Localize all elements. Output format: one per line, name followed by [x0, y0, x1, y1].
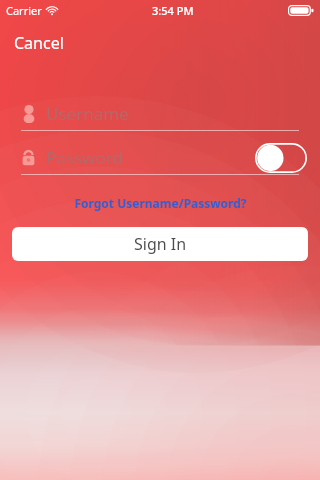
staticText: 3:54 PM — [152, 3, 194, 18]
button[interactable]: Username — [0, 97, 320, 130]
staticText: Password — [46, 146, 123, 169]
staticText: Cancel — [14, 32, 64, 54]
staticText: Username — [46, 102, 129, 125]
button[interactable]: Forgot Username/Password? — [0, 195, 320, 211]
staticText: Sign In — [134, 233, 187, 255]
button[interactable]: Password — [21, 146, 123, 169]
button[interactable]: Remember me toggle — [255, 143, 307, 173]
button[interactable]: Cancel — [10, 28, 68, 58]
staticText: Forgot Username/Password? — [74, 195, 247, 211]
button[interactable]: Sign In — [12, 227, 308, 261]
staticText: Carrier — [6, 3, 42, 18]
